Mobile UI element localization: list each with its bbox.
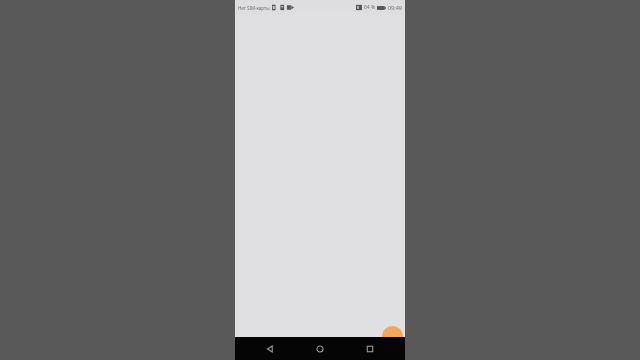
button[interactable]: Recent apps	[355, 337, 385, 360]
button[interactable]: Home	[305, 337, 335, 360]
staticText: 64 %	[364, 4, 376, 11]
button[interactable]: Back	[255, 337, 285, 360]
staticText: Нет SIM-карты	[238, 5, 270, 11]
button[interactable]: Add	[382, 326, 403, 337]
staticText: 09:49	[387, 4, 402, 11]
